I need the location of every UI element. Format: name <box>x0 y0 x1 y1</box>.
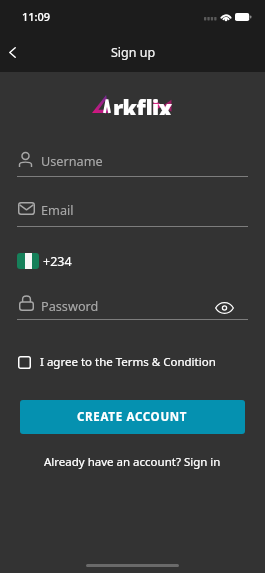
staticText: I agree to the Terms & Condition <box>40 354 216 370</box>
staticText: CREATE ACCOUNT <box>77 409 188 425</box>
button[interactable] <box>17 246 248 276</box>
staticText: Email <box>41 201 74 218</box>
staticText: +234 <box>43 253 72 270</box>
button[interactable] <box>17 194 248 228</box>
staticText: Username <box>41 152 103 169</box>
button[interactable] <box>17 292 248 318</box>
staticText: Password <box>41 297 99 314</box>
button[interactable] <box>17 350 248 376</box>
staticText: Sign up <box>111 44 156 61</box>
button[interactable] <box>17 144 248 178</box>
button[interactable]: Back <box>0 32 32 72</box>
staticText: 11:09 <box>22 9 51 24</box>
button[interactable]: Already have an account? Sign in <box>44 454 221 470</box>
button[interactable]: CREATE ACCOUNT <box>20 400 245 434</box>
staticText: rkflix <box>113 93 172 115</box>
button[interactable]: Show password <box>210 298 238 318</box>
